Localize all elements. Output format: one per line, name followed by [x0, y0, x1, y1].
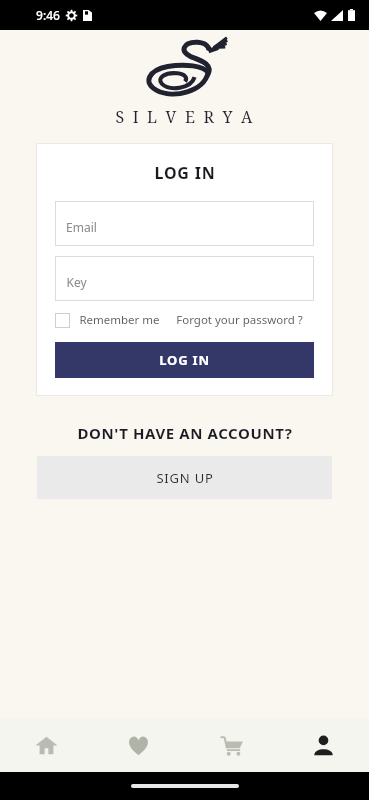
staticText: LOG IN [159, 351, 210, 369]
staticText: DON'T HAVE AN ACCOUNT? [77, 423, 293, 443]
staticText: SIGN UP [156, 469, 214, 487]
staticText: 9:46 [36, 7, 60, 23]
button[interactable]: Key [55, 256, 314, 301]
staticText: Forgot your password ? [176, 312, 303, 328]
button[interactable]: Forgot your password ? [176, 312, 303, 328]
staticText: S I L V E R Y A [115, 106, 255, 128]
button[interactable]: Cart [185, 718, 277, 772]
button[interactable]: Profile [277, 718, 369, 772]
button[interactable]: SIGN UP [37, 456, 332, 499]
button[interactable]: Email [55, 201, 314, 246]
staticText: Key [66, 274, 87, 290]
button[interactable]: LOG IN [55, 342, 314, 378]
staticText: Remember me [79, 312, 160, 328]
staticText: Email [66, 219, 97, 235]
button[interactable]: Home [0, 718, 92, 772]
button[interactable]: Remember me [55, 312, 160, 328]
staticText: LOG IN [154, 162, 216, 184]
button[interactable]: Favorites [92, 718, 184, 772]
